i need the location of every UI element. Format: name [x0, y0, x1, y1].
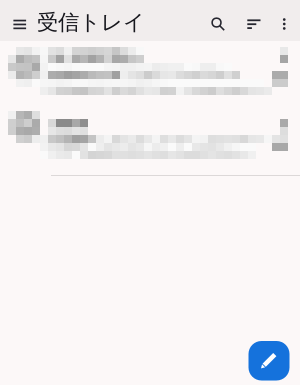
- staticText: 受信トレイ: [37, 9, 145, 36]
- button[interactable]: Sort: [0, 0, 300, 385]
- button[interactable]: Search: [0, 0, 300, 385]
- button[interactable]: More options: [0, 0, 300, 385]
- button[interactable]: [0, 0, 300, 385]
- button[interactable]: Menu: [0, 0, 300, 385]
- button[interactable]: Compose: [0, 0, 300, 385]
- button[interactable]: [0, 0, 300, 385]
